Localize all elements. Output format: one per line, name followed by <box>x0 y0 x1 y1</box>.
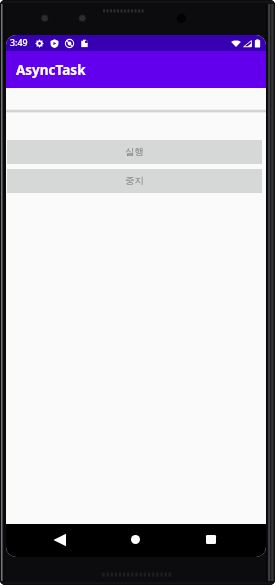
staticText: 실행 <box>125 146 144 158</box>
staticText: 중지 <box>125 175 144 187</box>
button[interactable]: 중지 <box>7 169 262 193</box>
staticText: 3:49 <box>10 37 28 49</box>
staticText: AsyncTask <box>16 61 86 79</box>
button[interactable]: 실행 <box>7 140 262 164</box>
button[interactable]: Back <box>41 523 79 556</box>
button[interactable]: Home <box>115 523 155 556</box>
button[interactable]: Recents <box>192 523 230 556</box>
